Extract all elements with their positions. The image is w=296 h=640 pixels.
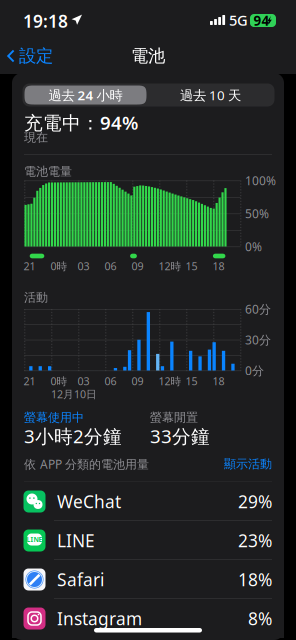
staticText: 30分	[245, 332, 271, 348]
staticText: 18	[212, 259, 224, 273]
staticText: 0時	[50, 374, 67, 388]
staticText: 60分	[245, 301, 271, 317]
staticText: 過去 10 天	[180, 86, 241, 104]
staticText: 06	[104, 259, 116, 273]
staticText: 12月10日	[51, 387, 97, 401]
staticText: 06	[104, 374, 116, 388]
staticText: 21	[23, 374, 35, 388]
staticText: Instagram	[57, 607, 142, 630]
button[interactable]: 顯示活動	[224, 457, 272, 471]
staticText: 09	[131, 259, 143, 273]
staticText: 0時	[50, 259, 67, 273]
staticText: 8%	[248, 607, 272, 630]
staticText: 電池	[131, 45, 165, 67]
button[interactable]: WeChat	[12, 482, 284, 521]
staticText: 螢幕閒置	[150, 410, 198, 425]
button[interactable]: 過去 10 天	[148, 85, 272, 104]
staticText: 50%	[245, 205, 269, 221]
staticText: 12時	[158, 259, 181, 273]
staticText: 15	[185, 374, 197, 388]
staticText: 依 APP 分類的電池用量	[24, 456, 149, 472]
staticText: 21	[23, 259, 35, 273]
button[interactable]: Instagram	[12, 599, 284, 638]
staticText: 充電中：94%	[24, 110, 138, 135]
staticText: 23%	[238, 529, 272, 552]
staticText: 15	[185, 259, 197, 273]
button[interactable]: LINE	[12, 521, 284, 560]
staticText: 過去 24 小時	[48, 86, 122, 104]
staticText: LINE	[26, 535, 42, 544]
staticText: 12時	[158, 374, 181, 388]
staticText: 100%	[245, 172, 276, 188]
staticText: 33分鐘	[150, 424, 210, 448]
staticText: 活動	[24, 290, 48, 305]
staticText: 18	[212, 374, 224, 388]
staticText: 3小時2分鐘	[24, 424, 122, 448]
staticText: 設定	[19, 45, 53, 67]
staticText: LINE	[57, 529, 95, 552]
button[interactable]: 設定	[7, 44, 69, 68]
staticText: 螢幕使用中	[24, 410, 84, 425]
button[interactable]: 過去 24 小時	[24, 85, 146, 104]
staticText: 03	[77, 259, 89, 273]
staticText: 18%	[238, 568, 272, 591]
staticText: 0分	[245, 362, 264, 378]
staticText: 19:18	[23, 9, 68, 32]
staticText: 09	[131, 374, 143, 388]
staticText: 顯示活動	[224, 457, 272, 471]
staticText: 94	[253, 12, 269, 29]
staticText: 03	[77, 374, 89, 388]
staticText: 5G	[229, 10, 248, 30]
staticText: 0%	[245, 238, 262, 254]
staticText: 電池電量	[24, 164, 72, 179]
staticText: WeChat	[57, 490, 121, 513]
staticText: Safari	[57, 568, 104, 591]
button[interactable]: Safari	[12, 560, 284, 599]
staticText: 29%	[238, 490, 272, 513]
staticText: 現在	[24, 130, 48, 145]
